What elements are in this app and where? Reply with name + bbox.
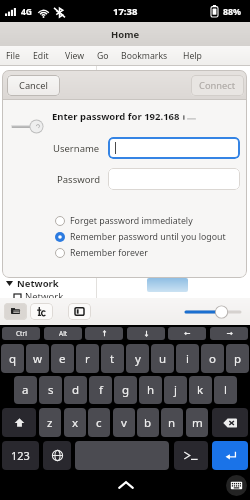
button[interactable]: z <box>39 408 61 437</box>
staticText: Password <box>57 173 100 186</box>
staticText: p <box>234 351 242 367</box>
button[interactable]: File <box>6 46 250 66</box>
button[interactable] <box>174 441 208 470</box>
staticText: r <box>85 351 90 367</box>
button[interactable]: n <box>161 408 183 437</box>
button[interactable]: y <box>126 344 149 373</box>
button[interactable]: k <box>189 376 212 404</box>
button[interactable]: d <box>64 376 87 404</box>
staticText: Ctrl <box>16 329 27 338</box>
button[interactable] <box>210 327 248 340</box>
staticText: f <box>99 382 103 398</box>
staticText: 123 <box>11 448 30 463</box>
button[interactable]: Help <box>183 46 250 66</box>
button[interactable]: u <box>151 344 174 373</box>
staticText: Network <box>17 277 59 290</box>
button[interactable]: w <box>26 344 49 373</box>
button[interactable]: Remember password until you logout <box>55 229 226 244</box>
button[interactable] <box>108 137 240 159</box>
staticText: a <box>22 382 29 398</box>
button[interactable]: Space <box>75 441 169 470</box>
staticText: q <box>9 351 17 367</box>
staticText: Remember forever <box>70 247 148 259</box>
staticText: Remember password until you logout <box>70 231 226 243</box>
button[interactable]: Show folders <box>4 303 27 320</box>
button[interactable]: View <box>65 46 250 66</box>
button[interactable] <box>85 327 123 340</box>
button[interactable]: Edit <box>33 46 250 66</box>
button[interactable]: v <box>113 408 135 437</box>
staticText: y <box>135 351 141 367</box>
staticText: Network <box>25 290 64 303</box>
button[interactable]: 123 <box>2 441 39 470</box>
button[interactable]: Hide keyboard <box>112 473 140 497</box>
button[interactable]: Enter <box>212 441 248 470</box>
button[interactable]: q <box>1 344 24 373</box>
staticText: Forget password immediately <box>70 215 193 227</box>
staticText: h <box>147 382 155 398</box>
button[interactable]: p <box>226 344 249 373</box>
button[interactable]: a <box>14 376 37 404</box>
staticText: Edit <box>33 50 49 62</box>
button[interactable]: Rename <box>30 303 53 320</box>
staticText: 88% <box>223 6 241 18</box>
button[interactable]: Alt <box>44 327 82 340</box>
button[interactable]: t <box>101 344 124 373</box>
staticText: Help <box>183 50 202 62</box>
staticText: Home <box>111 28 140 41</box>
staticText: w <box>33 351 43 367</box>
button[interactable]: Forget password immediately <box>55 213 193 228</box>
button[interactable]: j <box>164 376 187 404</box>
button[interactable]: Change keyboard language <box>43 441 71 470</box>
button[interactable]: Backspace <box>212 408 248 437</box>
button[interactable]: s <box>39 376 62 404</box>
button[interactable]: Toggle sidebar <box>68 303 91 320</box>
button[interactable]: r <box>76 344 99 373</box>
staticText: z <box>47 415 53 431</box>
button[interactable]: g <box>114 376 137 404</box>
staticText: e <box>59 351 66 367</box>
staticText: d <box>72 382 80 398</box>
button[interactable]: Bookmarks <box>121 46 250 66</box>
staticText: m <box>192 415 203 431</box>
staticText: n <box>168 415 176 431</box>
button[interactable]: h <box>139 376 162 404</box>
staticText: t <box>110 351 115 367</box>
button[interactable]: m <box>186 408 208 437</box>
staticText: Go <box>97 50 109 62</box>
staticText: Cancel <box>19 79 48 92</box>
button[interactable] <box>108 168 240 190</box>
button[interactable]: Go <box>97 46 250 66</box>
button[interactable]: c <box>88 408 110 437</box>
button[interactable]: e <box>51 344 74 373</box>
staticText: File <box>6 50 20 62</box>
staticText: 4G <box>21 6 33 18</box>
button[interactable]: Switch keyboard <box>226 475 247 496</box>
staticText: s <box>48 382 54 398</box>
button[interactable]: Ctrl <box>2 327 40 340</box>
button[interactable]: b <box>137 408 159 437</box>
staticText: k <box>197 382 204 398</box>
staticText: Bookmarks <box>121 50 168 62</box>
staticText: View <box>65 50 85 62</box>
staticText: Username <box>53 142 100 155</box>
staticText: u <box>159 351 167 367</box>
staticText: Alt <box>59 329 68 338</box>
button[interactable]: f <box>89 376 112 404</box>
button[interactable]: o <box>201 344 224 373</box>
button[interactable] <box>168 327 206 340</box>
button[interactable]: l <box>214 376 237 404</box>
staticText: j <box>174 382 177 398</box>
button[interactable] <box>127 327 165 340</box>
staticText: Enter password for 192.168 <box>52 110 180 123</box>
button[interactable]: x <box>64 408 86 437</box>
staticText: b <box>144 415 152 431</box>
button[interactable]: Shift <box>2 408 36 437</box>
button[interactable]: Remember forever <box>55 245 148 260</box>
button[interactable]: Connect <box>191 75 244 96</box>
staticText: g <box>122 382 130 398</box>
button[interactable]: i <box>176 344 199 373</box>
staticText: v <box>121 415 127 431</box>
staticText: o <box>209 351 216 367</box>
button[interactable]: Cancel <box>7 75 60 96</box>
